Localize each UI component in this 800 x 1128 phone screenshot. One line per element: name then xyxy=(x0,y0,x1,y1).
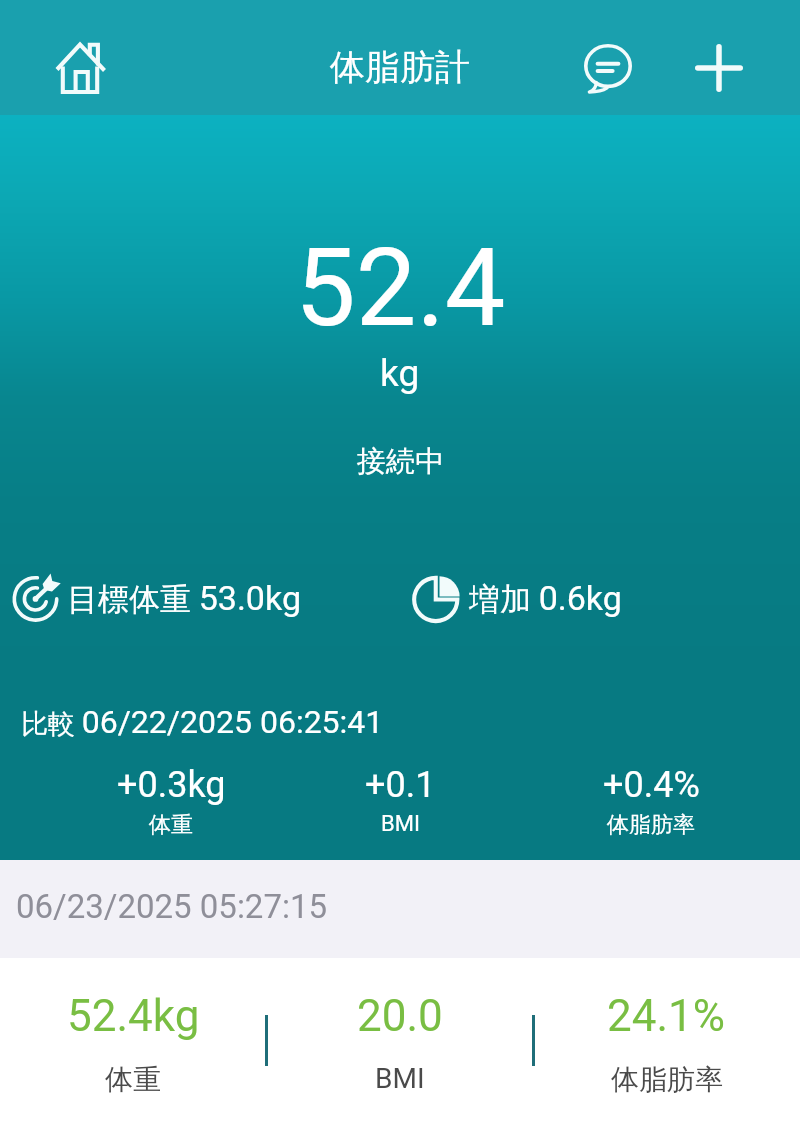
button[interactable]: 20.0 xyxy=(266,990,533,1095)
staticText: 52.4 xyxy=(295,225,506,352)
button[interactable]: 52.4kg xyxy=(0,990,266,1097)
staticText: 体脂肪計 xyxy=(330,45,470,89)
button[interactable]: Home xyxy=(49,36,113,100)
staticText: BMI xyxy=(375,1062,425,1095)
button[interactable]: +0.1 xyxy=(280,764,520,837)
staticText: 24.1% xyxy=(607,990,726,1042)
staticText: +0.3kg xyxy=(117,764,226,806)
staticText: 体重 xyxy=(105,1062,161,1097)
staticText: 体脂肪率 xyxy=(611,1062,723,1097)
button[interactable]: +0.3kg xyxy=(51,764,291,839)
button[interactable]: 06/23/2025 05:27:15 xyxy=(0,860,800,958)
staticText: 比較 06/22/2025 06:25:41 xyxy=(21,703,384,741)
staticText: kg xyxy=(380,352,420,395)
button[interactable]: Add record xyxy=(687,36,751,100)
staticText: 06/23/2025 05:27:15 xyxy=(16,887,328,926)
button[interactable]: 増加 0.6kg xyxy=(411,573,622,623)
staticText: 体脂肪率 xyxy=(607,811,695,839)
staticText: 体重 xyxy=(149,811,193,839)
staticText: 接続中 xyxy=(357,443,444,480)
staticText: +0.4% xyxy=(603,764,700,806)
staticText: 20.0 xyxy=(357,990,443,1042)
staticText: BMI xyxy=(381,811,420,837)
staticText: 52.4kg xyxy=(67,990,200,1042)
staticText: +0.1 xyxy=(365,764,436,806)
button[interactable]: 24.1% xyxy=(533,990,800,1097)
staticText: 目標体重 53.0kg xyxy=(67,578,301,619)
button[interactable]: +0.4% xyxy=(531,764,771,839)
staticText: 増加 0.6kg xyxy=(469,578,622,619)
button[interactable]: 目標体重 53.0kg xyxy=(12,573,301,623)
button[interactable]: Messages xyxy=(576,36,640,100)
